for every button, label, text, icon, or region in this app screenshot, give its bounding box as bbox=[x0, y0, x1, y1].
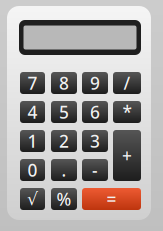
button[interactable]: √ bbox=[20, 188, 45, 210]
button[interactable]: 3 bbox=[82, 130, 108, 152]
staticText: . bbox=[61, 158, 66, 181]
staticText: √ bbox=[27, 189, 38, 209]
button[interactable]: 0 bbox=[20, 159, 45, 181]
button[interactable]: 8 bbox=[51, 72, 77, 94]
button[interactable]: 1 bbox=[20, 130, 45, 152]
button[interactable]: - bbox=[82, 159, 108, 181]
button[interactable]: 6 bbox=[82, 101, 108, 123]
staticText: + bbox=[122, 144, 132, 167]
staticText: 3 bbox=[90, 129, 100, 152]
staticText: 6 bbox=[90, 100, 100, 123]
staticText: 2 bbox=[59, 129, 69, 152]
staticText: 1 bbox=[27, 129, 37, 152]
button[interactable]: 5 bbox=[51, 101, 77, 123]
button[interactable]: 7 bbox=[20, 72, 45, 94]
button[interactable]: * bbox=[113, 101, 141, 123]
staticText: 5 bbox=[59, 100, 69, 123]
staticText: - bbox=[92, 158, 98, 181]
staticText: 0 bbox=[27, 158, 37, 181]
button[interactable]: 9 bbox=[82, 72, 108, 94]
staticText: = bbox=[106, 187, 116, 210]
button[interactable]: + bbox=[113, 130, 141, 181]
staticText: * bbox=[122, 100, 131, 123]
button[interactable]: 2 bbox=[51, 130, 77, 152]
button[interactable]: . bbox=[51, 159, 77, 181]
staticText: / bbox=[123, 71, 130, 94]
staticText: 7 bbox=[27, 71, 37, 94]
staticText: % bbox=[56, 187, 71, 210]
staticText: 4 bbox=[27, 100, 37, 123]
button[interactable]: 4 bbox=[20, 101, 45, 123]
staticText: 9 bbox=[90, 71, 100, 94]
staticText: 8 bbox=[59, 71, 69, 94]
button[interactable]: % bbox=[51, 188, 77, 210]
button[interactable]: / bbox=[113, 72, 141, 94]
button[interactable]: = bbox=[82, 188, 141, 210]
